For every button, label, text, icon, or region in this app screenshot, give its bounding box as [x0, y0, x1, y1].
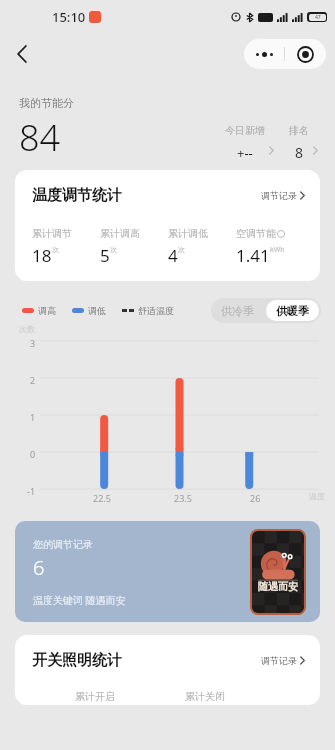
staticText: 调低 — [88, 305, 106, 316]
staticText: 累计开启 — [75, 690, 115, 703]
staticText: 今日新增 — [225, 124, 265, 137]
staticText: 15:10 — [52, 8, 86, 26]
staticText: 供冷季 — [221, 304, 254, 318]
staticText: 84 — [19, 113, 61, 162]
staticText: 供暖季 — [276, 304, 309, 318]
button[interactable]: Back — [6, 37, 40, 71]
button[interactable]: 调节记录 — [261, 190, 306, 201]
staticText: 26 — [250, 492, 261, 504]
button[interactable]: 温度调节统计 — [15, 170, 320, 281]
staticText: 18 — [32, 244, 52, 267]
button[interactable]: More — [244, 39, 284, 69]
button[interactable]: 供暖季 — [276, 300, 309, 321]
button[interactable]: 供冷季 — [221, 298, 254, 323]
button[interactable]: 今日新增 — [225, 124, 275, 162]
staticText: 3 — [30, 337, 36, 349]
staticText: 0 — [30, 448, 36, 460]
staticText: 累计调高 — [100, 227, 140, 240]
button[interactable]: Close — [285, 39, 326, 69]
staticText: 温度 — [309, 491, 325, 501]
staticText: 1 — [30, 411, 36, 423]
button[interactable]: 开关照明统计 — [15, 635, 320, 705]
staticText: 舒适温度 — [138, 305, 174, 316]
staticText: 空调节能 — [236, 227, 276, 240]
staticText: 累计调节 — [32, 227, 72, 240]
staticText: 开关照明统计 — [32, 651, 122, 670]
staticText: 5 — [100, 244, 110, 267]
staticText: 我的节能分 — [19, 96, 74, 110]
staticText: 调高 — [38, 305, 56, 316]
staticText: 6 — [33, 554, 45, 581]
staticText: 调节记录 — [261, 655, 297, 666]
staticText: 次数 — [19, 324, 35, 334]
staticText: 排名 — [289, 124, 309, 137]
staticText: kWh — [270, 245, 285, 255]
staticText: 4 — [168, 244, 178, 267]
staticText: 47 — [315, 14, 321, 21]
staticText: 22.5 — [93, 492, 111, 504]
staticText: 1.41 — [236, 244, 270, 267]
staticText: 随遇而安 — [258, 580, 298, 593]
staticText: 累计关闭 — [185, 690, 225, 703]
staticText: 8 — [295, 143, 304, 162]
staticText: 累计调低 — [168, 227, 208, 240]
staticText: 次 — [110, 245, 117, 254]
staticText: 您的调节记录 — [33, 538, 93, 551]
button[interactable]: 调节记录 — [261, 655, 306, 666]
staticText: 温度关键词 随遇而安 — [33, 593, 126, 607]
staticText: 次 — [178, 245, 185, 254]
staticText: +-- — [237, 144, 253, 162]
staticText: -1 — [27, 485, 36, 497]
staticText: 23.5 — [174, 492, 192, 504]
button[interactable]: 排名 — [289, 124, 319, 162]
button[interactable]: 您的调节记录 — [15, 521, 320, 622]
staticText: 调节记录 — [261, 190, 297, 201]
staticText: 温度调节统计 — [32, 186, 122, 205]
staticText: 2 — [30, 374, 36, 386]
staticText: 次 — [52, 245, 59, 254]
